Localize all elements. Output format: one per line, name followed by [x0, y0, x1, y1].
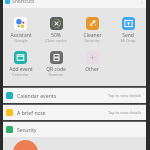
staticText: Security [84, 38, 100, 43]
staticText: QR code [46, 66, 66, 73]
staticText: Clear cache [45, 38, 67, 43]
button[interactable]: Security [3, 122, 146, 137]
button[interactable]: Send [110, 17, 146, 44]
button[interactable]: A brief note [3, 105, 146, 120]
staticText: A brief note [17, 109, 46, 116]
staticText: Tap to view details [108, 110, 142, 115]
staticText: Other [85, 66, 99, 73]
button[interactable]: Clear cache [38, 17, 74, 44]
button[interactable]: QR code [38, 51, 74, 78]
staticText: Calendar [12, 72, 29, 77]
staticText: Google [14, 38, 28, 43]
staticText: Send [122, 32, 134, 39]
staticText: Mi Drop [120, 38, 136, 43]
staticText: Calendar events [17, 92, 57, 99]
staticText: 50% [51, 32, 61, 39]
button[interactable]: Add event [3, 51, 38, 78]
staticText: Cleaner [83, 32, 102, 39]
other: Assistant [14, 17, 27, 30]
other: Other [86, 51, 99, 64]
staticText: Security [17, 126, 37, 133]
other: Cleaner [86, 17, 99, 30]
other: Clear cache [50, 17, 63, 30]
other: QR code [50, 51, 63, 64]
button[interactable]: Calendar events [3, 88, 146, 103]
other: Add event [14, 51, 27, 64]
staticText: Shortcuts [12, 0, 35, 5]
staticText: Tap to view details [108, 93, 142, 98]
staticText: Scanner [48, 72, 64, 77]
button[interactable]: Assistant [3, 17, 38, 44]
staticText: Add event [9, 66, 33, 73]
other: Send [122, 17, 135, 30]
button[interactable]: Cleaner [74, 17, 110, 44]
staticText: Assistant [10, 32, 32, 39]
button[interactable]: Other [74, 51, 110, 73]
